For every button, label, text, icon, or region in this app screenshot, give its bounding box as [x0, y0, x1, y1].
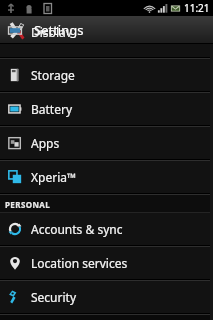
button[interactable]: Accounts & sync [0, 213, 213, 245]
staticText: Storage [31, 67, 75, 83]
staticText: Settings [34, 21, 84, 39]
staticText: Location services [31, 255, 128, 271]
staticText: PERSONAL [5, 199, 51, 210]
staticText: Battery [31, 101, 73, 117]
button[interactable]: Apps [0, 127, 213, 159]
staticText: 11:21 [184, 1, 210, 15]
button[interactable]: Xperia™ [0, 161, 213, 193]
staticText: Apps [31, 135, 60, 151]
button[interactable]: Battery [0, 93, 213, 125]
staticText: Security [31, 289, 77, 305]
button[interactable]: Location services [0, 247, 213, 279]
staticText: Display [31, 24, 72, 37]
staticText: Accounts & sync [31, 221, 123, 237]
button[interactable]: Security [0, 281, 213, 313]
button[interactable]: Storage [0, 59, 213, 91]
staticText: Xperia™ [31, 169, 77, 185]
